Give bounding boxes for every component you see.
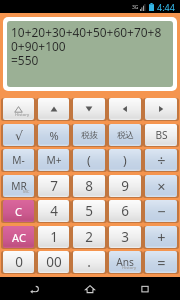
button[interactable]: Home — [70, 277, 110, 300]
staticText: ) — [123, 152, 127, 169]
staticText: 4 — [50, 202, 58, 220]
staticText: AC — [12, 230, 26, 245]
staticText: 5 — [85, 202, 93, 220]
button[interactable]: 3 — [109, 226, 141, 248]
button[interactable]: − — [145, 200, 177, 222]
button[interactable]: Ans — [109, 251, 141, 273]
staticText: 3G — [132, 4, 139, 11]
staticText: 9 — [121, 177, 129, 195]
button[interactable]: BS — [145, 124, 177, 146]
button[interactable]: 税込 — [109, 124, 141, 146]
button[interactable]: Right — [145, 98, 177, 120]
button[interactable]: Up — [38, 98, 69, 120]
staticText: 3 — [121, 228, 129, 246]
button[interactable]: 5 — [73, 200, 105, 222]
button[interactable]: M- — [3, 149, 34, 171]
button[interactable]: 6 — [109, 200, 141, 222]
button[interactable]: 1 — [38, 226, 69, 248]
staticText: ( — [87, 152, 91, 169]
staticText: 00 — [46, 253, 62, 271]
staticText: = — [157, 252, 166, 272]
button[interactable]: AC — [3, 226, 34, 248]
button[interactable]: C — [3, 200, 34, 222]
button[interactable]: Recent apps — [125, 277, 165, 300]
button[interactable]: History — [3, 98, 34, 120]
button[interactable]: √ — [3, 124, 34, 146]
staticText: MC — [23, 189, 30, 195]
staticText: 税抜 — [81, 130, 98, 141]
button[interactable]: ) — [109, 149, 141, 171]
button[interactable]: % — [38, 124, 69, 146]
button[interactable]: Down — [73, 98, 105, 120]
staticText: History — [15, 112, 30, 118]
staticText: √ — [15, 128, 23, 143]
staticText: ÷ — [157, 150, 166, 170]
staticText: Ans — [116, 255, 134, 269]
button[interactable]: 4 — [38, 200, 69, 222]
button[interactable]: 8 — [73, 175, 105, 197]
staticText: 税込 — [117, 130, 134, 141]
button[interactable]: × — [145, 175, 177, 197]
staticText: 4:44 — [157, 1, 175, 13]
button[interactable]: 00 — [38, 251, 69, 273]
staticText: 6 — [121, 202, 129, 220]
button[interactable]: 9 — [109, 175, 141, 197]
button[interactable]: 0 — [3, 251, 34, 273]
button[interactable]: = — [145, 251, 177, 273]
button[interactable]: 7 — [38, 175, 69, 197]
staticText: 10+20+30+40+50+60+70+80+90+100 =550 — [11, 24, 167, 69]
button[interactable]: ÷ — [145, 149, 177, 171]
staticText: 1 — [50, 228, 58, 246]
staticText: C — [15, 204, 22, 219]
staticText: − — [157, 201, 166, 221]
staticText: + — [157, 227, 166, 247]
staticText: M- — [12, 153, 25, 167]
button[interactable]: M+ — [38, 149, 69, 171]
staticText: History — [122, 265, 137, 271]
staticText: 2 — [85, 228, 93, 246]
staticText: BS — [155, 128, 168, 142]
button[interactable]: 税抜 — [73, 124, 105, 146]
staticText: M+ — [46, 153, 62, 167]
button[interactable]: ( — [73, 149, 105, 171]
staticText: . — [87, 253, 91, 271]
staticText: 0 — [15, 253, 23, 271]
button[interactable]: + — [145, 226, 177, 248]
staticText: × — [157, 176, 166, 196]
button[interactable]: . — [73, 251, 105, 273]
staticText: MR — [11, 179, 27, 193]
staticText: 8 — [85, 177, 93, 195]
button[interactable]: Back — [15, 277, 55, 300]
button[interactable]: 2 — [73, 226, 105, 248]
staticText: 7 — [50, 177, 58, 195]
staticText: % — [49, 128, 59, 143]
button[interactable]: MR — [3, 175, 34, 197]
button[interactable]: Left — [109, 98, 141, 120]
